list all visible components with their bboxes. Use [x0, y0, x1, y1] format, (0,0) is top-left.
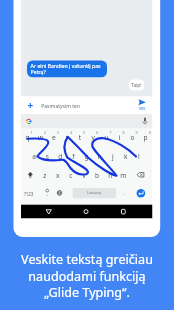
button[interactable] — [0, 0, 174, 310]
